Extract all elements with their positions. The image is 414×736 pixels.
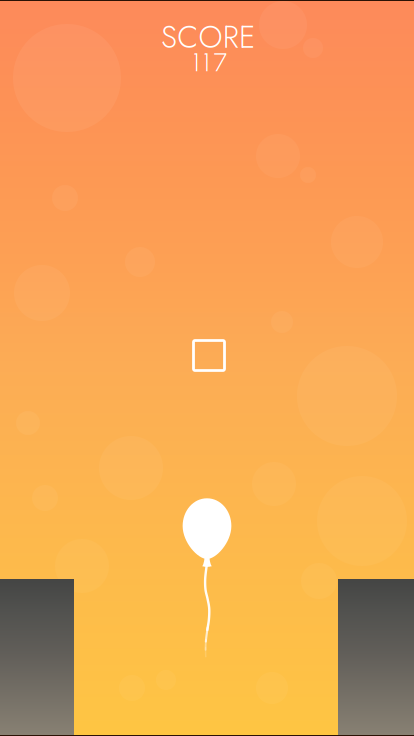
button[interactable]: Tap to rise xyxy=(0,0,414,736)
staticText: 7 xyxy=(214,48,227,77)
staticText: SCORE xyxy=(161,15,255,59)
staticText: 1 xyxy=(193,48,199,77)
staticText: 1 xyxy=(203,48,209,77)
